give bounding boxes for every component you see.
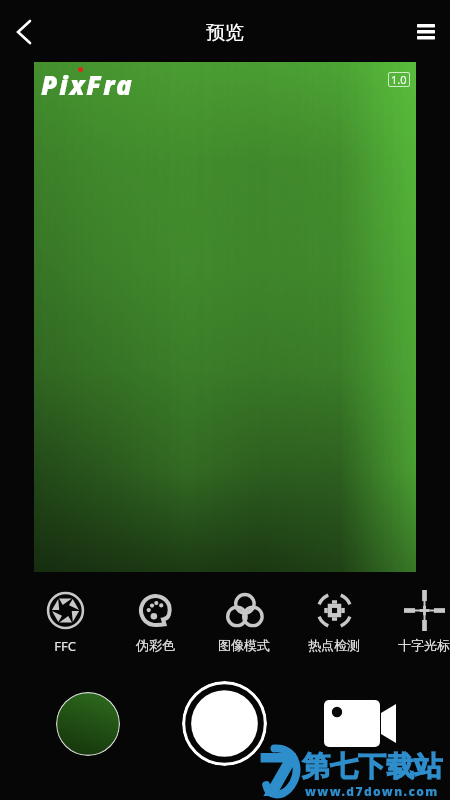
staticText: FFC	[54, 637, 76, 655]
staticText: 十字光标	[398, 637, 450, 653]
staticText: 1.0	[391, 72, 407, 87]
button[interactable]: Record video	[318, 690, 402, 756]
button[interactable]: Back	[2, 10, 46, 54]
button[interactable]: Capture photo	[182, 681, 267, 766]
staticText: 预览	[206, 21, 244, 45]
button[interactable]: Menu	[404, 10, 448, 54]
staticText: 图像模式	[218, 637, 270, 653]
staticText: www.d7down.com	[305, 783, 439, 799]
button[interactable]: 伪彩色	[111, 590, 199, 653]
staticText: 伪彩色	[136, 637, 175, 653]
button[interactable]: 热点检测	[290, 590, 378, 653]
staticText: 第七下载站	[302, 749, 442, 784]
button[interactable]: 图像模式	[200, 590, 288, 653]
staticText: PixFra	[41, 67, 134, 102]
button[interactable]: FFC	[21, 590, 109, 655]
button[interactable]: Gallery	[56, 692, 120, 756]
button[interactable]: 十字光标	[380, 590, 450, 653]
staticText: 热点检测	[308, 637, 360, 653]
